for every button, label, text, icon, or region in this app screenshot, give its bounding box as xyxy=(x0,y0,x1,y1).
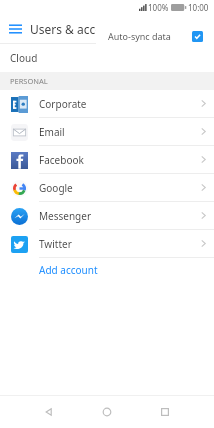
staticText: 100% xyxy=(148,2,169,13)
button[interactable]: Cloud xyxy=(0,44,214,72)
button[interactable]: Auto-sync data xyxy=(96,22,214,50)
staticText: Messenger xyxy=(39,209,92,223)
button[interactable]: Search xyxy=(165,14,191,43)
staticText: 10:00 xyxy=(188,2,209,13)
button[interactable]: Email xyxy=(0,118,214,146)
staticText: Email xyxy=(39,125,65,139)
button[interactable]: Back xyxy=(27,396,71,428)
staticText: Auto-sync data xyxy=(108,30,171,42)
button[interactable]: Corporate xyxy=(0,90,214,118)
staticText: Twitter xyxy=(39,237,72,251)
staticText: Google xyxy=(39,181,73,195)
button[interactable]: Twitter xyxy=(0,230,214,258)
staticText: Corporate xyxy=(39,97,87,111)
button[interactable]: Open navigation menu xyxy=(0,14,30,43)
staticText: Facebook xyxy=(39,153,84,167)
staticText: PERSONAL xyxy=(10,76,48,86)
button[interactable]: Add account xyxy=(0,258,214,282)
staticText: Add account xyxy=(39,263,98,277)
button[interactable]: Google xyxy=(0,174,214,202)
button[interactable]: Recent apps xyxy=(143,396,187,428)
button[interactable]: Messenger xyxy=(0,202,214,230)
button[interactable]: More options xyxy=(191,14,211,43)
button[interactable]: Home xyxy=(85,396,129,428)
staticText: Users & accounts xyxy=(30,21,128,37)
button[interactable]: Facebook xyxy=(0,146,214,174)
staticText: Cloud xyxy=(10,51,38,65)
